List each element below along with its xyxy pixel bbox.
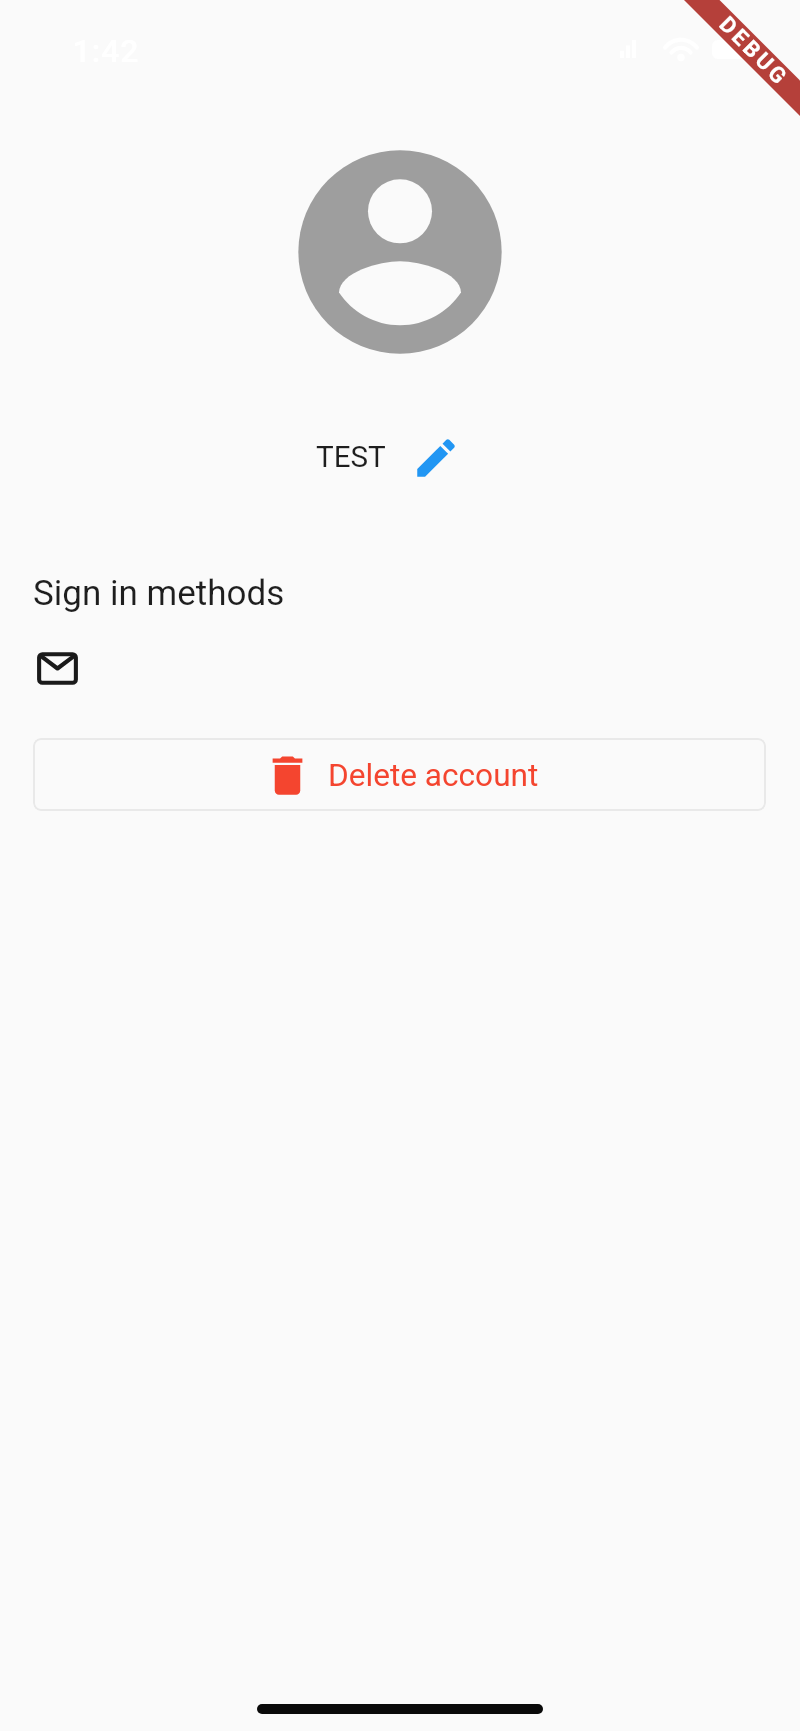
staticText: DEBUG	[714, 12, 794, 92]
staticText: TEST	[316, 440, 386, 475]
button[interactable]: Edit display name	[410, 432, 461, 483]
staticText: Sign in methods	[33, 573, 285, 614]
staticText: Delete account	[328, 757, 539, 794]
button[interactable]: Delete account	[33, 738, 766, 811]
button[interactable]: Email sign-in method	[33, 644, 82, 693]
